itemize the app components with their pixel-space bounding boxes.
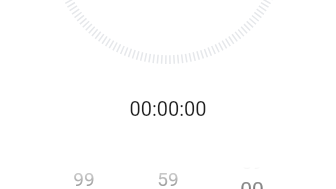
staticText: 59	[157, 168, 179, 189]
staticText: 00:00:00	[129, 97, 207, 120]
staticText: 99	[73, 168, 95, 189]
button[interactable]: 00:00:00	[118, 95, 218, 121]
button[interactable]: 00	[228, 176, 276, 189]
button[interactable]: 59	[144, 165, 192, 189]
other: Duration dial	[0, 0, 336, 189]
button[interactable]: 99	[60, 165, 108, 189]
staticText: 00	[240, 178, 264, 189]
